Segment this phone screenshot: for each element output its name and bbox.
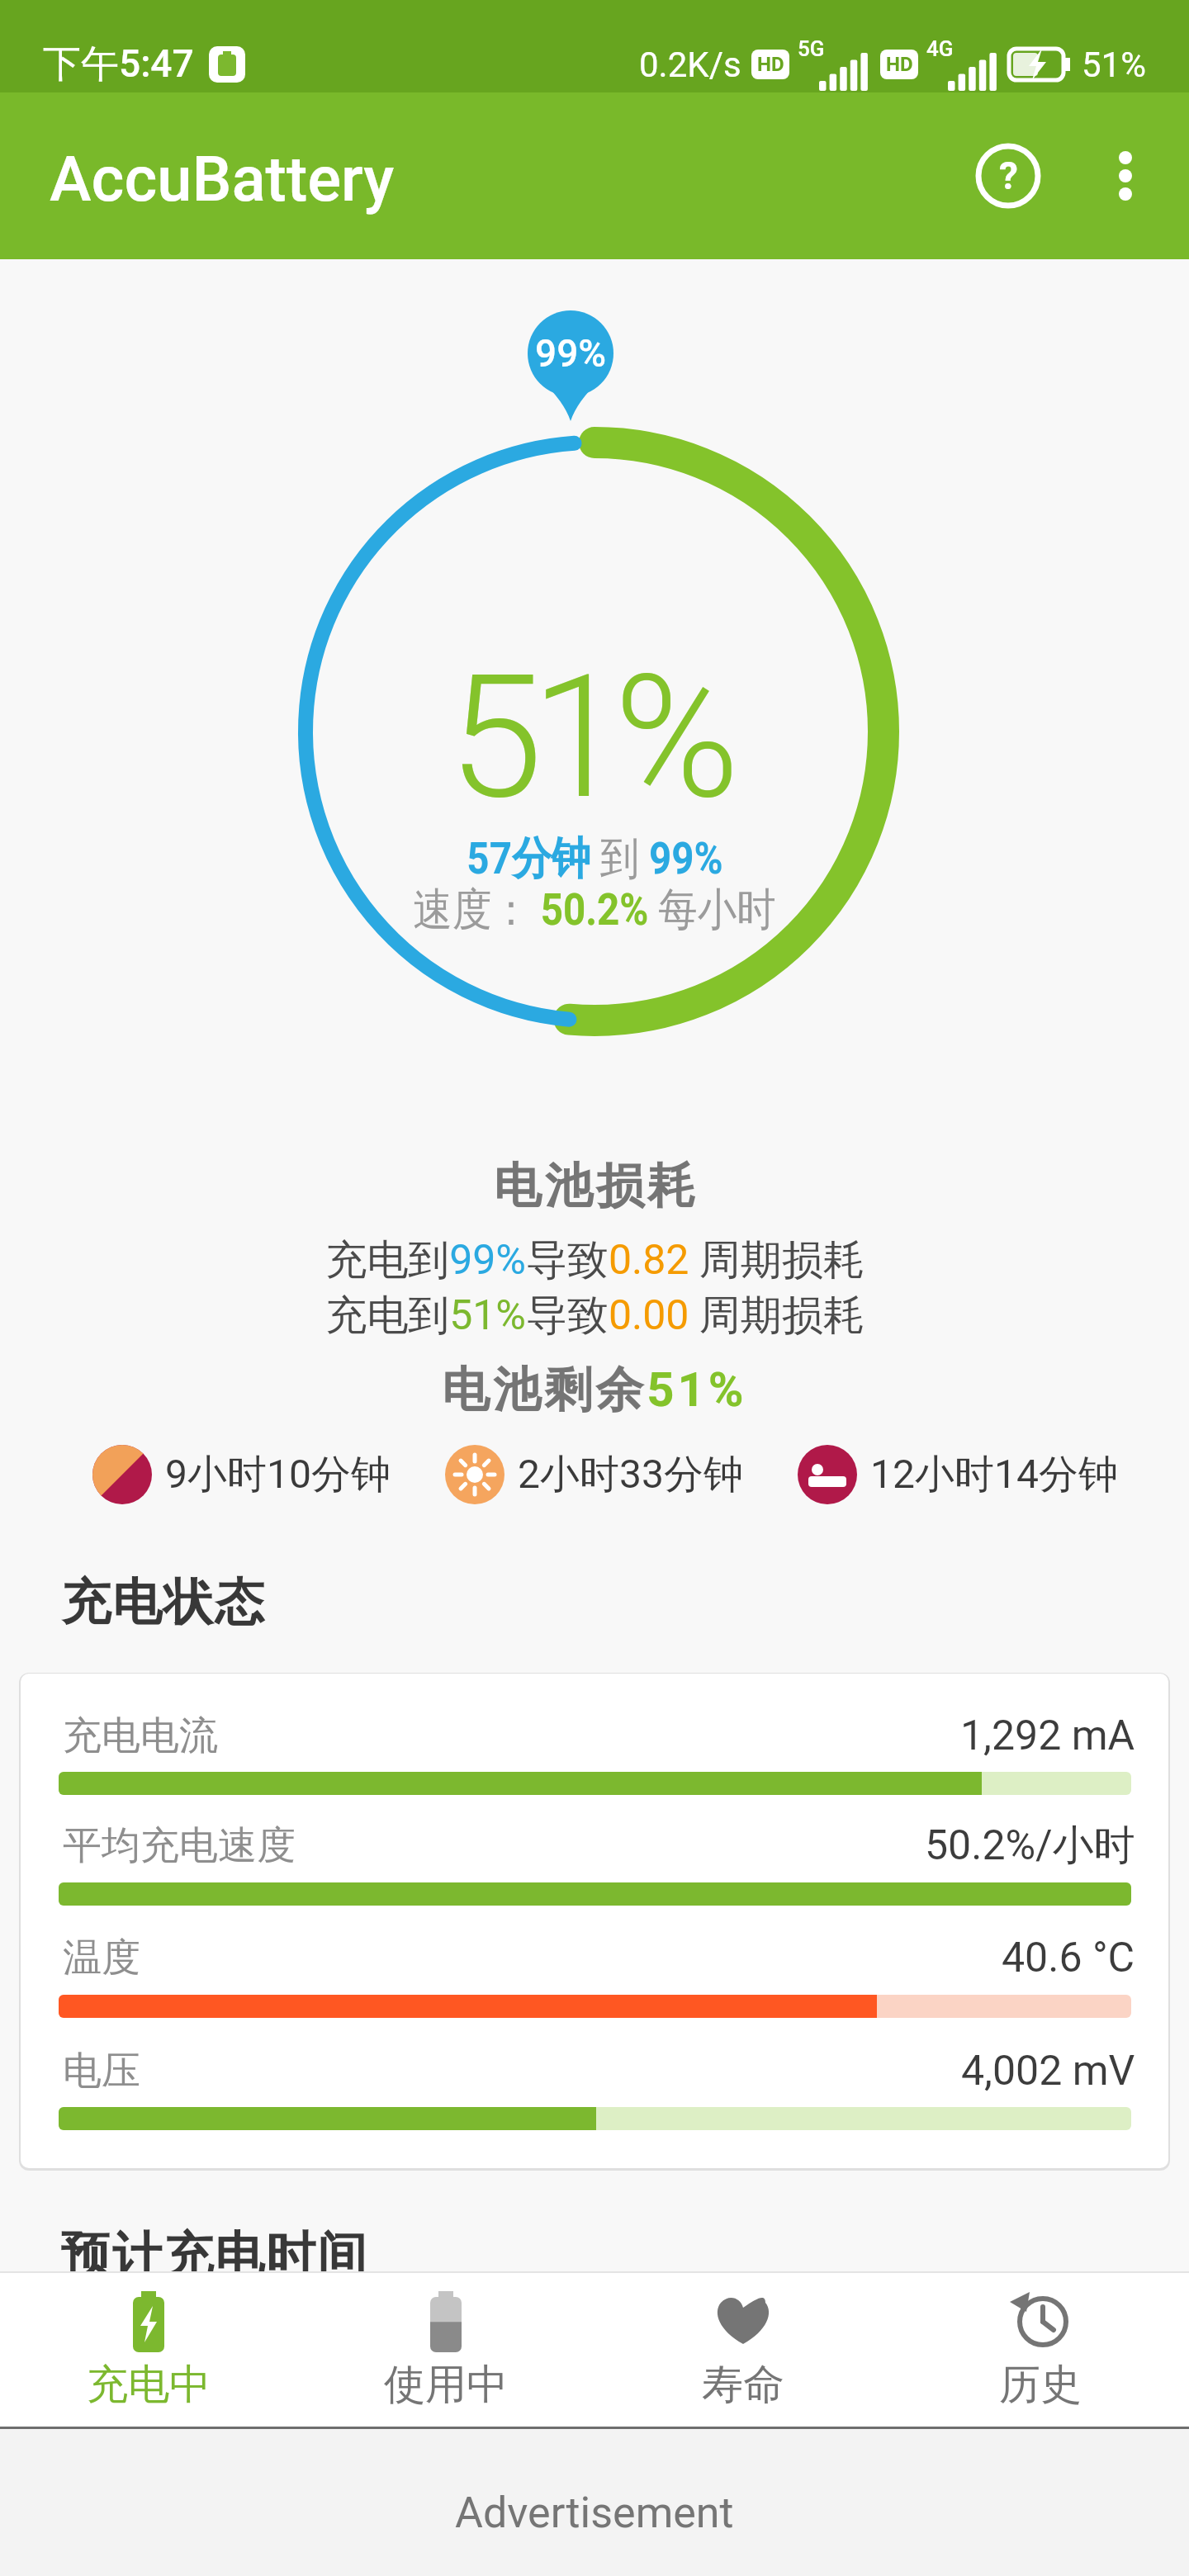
staticText: 50.2%/小时	[925, 1820, 1135, 1872]
staticText: 充电电流	[63, 1712, 218, 1760]
staticText: 速度： 50.2% 每小时	[413, 882, 776, 938]
staticText: 温度	[63, 1934, 140, 1982]
staticText: 平均充电速度	[63, 1821, 296, 1870]
staticText: 寿命	[702, 2359, 784, 2411]
button[interactable]: 历史	[892, 2271, 1189, 2427]
staticText: 预计充电时间	[60, 2224, 367, 2287]
staticText: 充电到51%导致0.00 周期损耗	[325, 1290, 865, 1342]
staticText: 5G	[798, 36, 825, 61]
button[interactable]: 充电中	[0, 2271, 297, 2427]
button[interactable]: ?	[971, 139, 1045, 213]
staticText: Advertisement	[455, 2488, 734, 2538]
staticText: 历史	[999, 2359, 1082, 2411]
staticText: 51%	[448, 638, 728, 837]
button[interactable]	[1095, 145, 1156, 206]
staticText: 2小时33分钟	[518, 1450, 743, 1499]
staticText: 电池剩余51%	[442, 1360, 747, 1420]
staticText: HD	[757, 53, 784, 76]
staticText: ?	[999, 154, 1018, 198]
staticText: HD	[886, 53, 913, 76]
staticText: 51%	[1082, 45, 1146, 85]
button[interactable]: 使用中	[297, 2271, 594, 2427]
staticText: 99%	[535, 331, 607, 376]
staticText: 充电状态	[60, 1571, 265, 1634]
staticText: 57分钟 到 99%	[467, 831, 723, 887]
staticText: 电池损耗	[492, 1156, 697, 1216]
staticText: 12小时14分钟	[870, 1450, 1118, 1499]
staticText: 充电到99%导致0.82 周期损耗	[325, 1234, 865, 1286]
staticText: 9小时10分钟	[165, 1450, 391, 1499]
staticText: 40.6 °C	[1002, 1934, 1135, 1982]
staticText: AccuBattery	[50, 142, 395, 215]
button[interactable]: Advertisement	[0, 2429, 1189, 2576]
staticText: 下午5:47	[43, 40, 194, 88]
staticText: 1,292 mA	[960, 1712, 1135, 1760]
staticText: 充电中	[87, 2359, 211, 2411]
staticText: 4,002 mV	[961, 2047, 1135, 2095]
staticText: 0.2K/s	[639, 45, 741, 85]
staticText: 电压	[63, 2047, 140, 2095]
staticText: 4G	[926, 36, 954, 61]
button[interactable]: 寿命	[594, 2271, 892, 2427]
staticText: 使用中	[384, 2359, 508, 2411]
